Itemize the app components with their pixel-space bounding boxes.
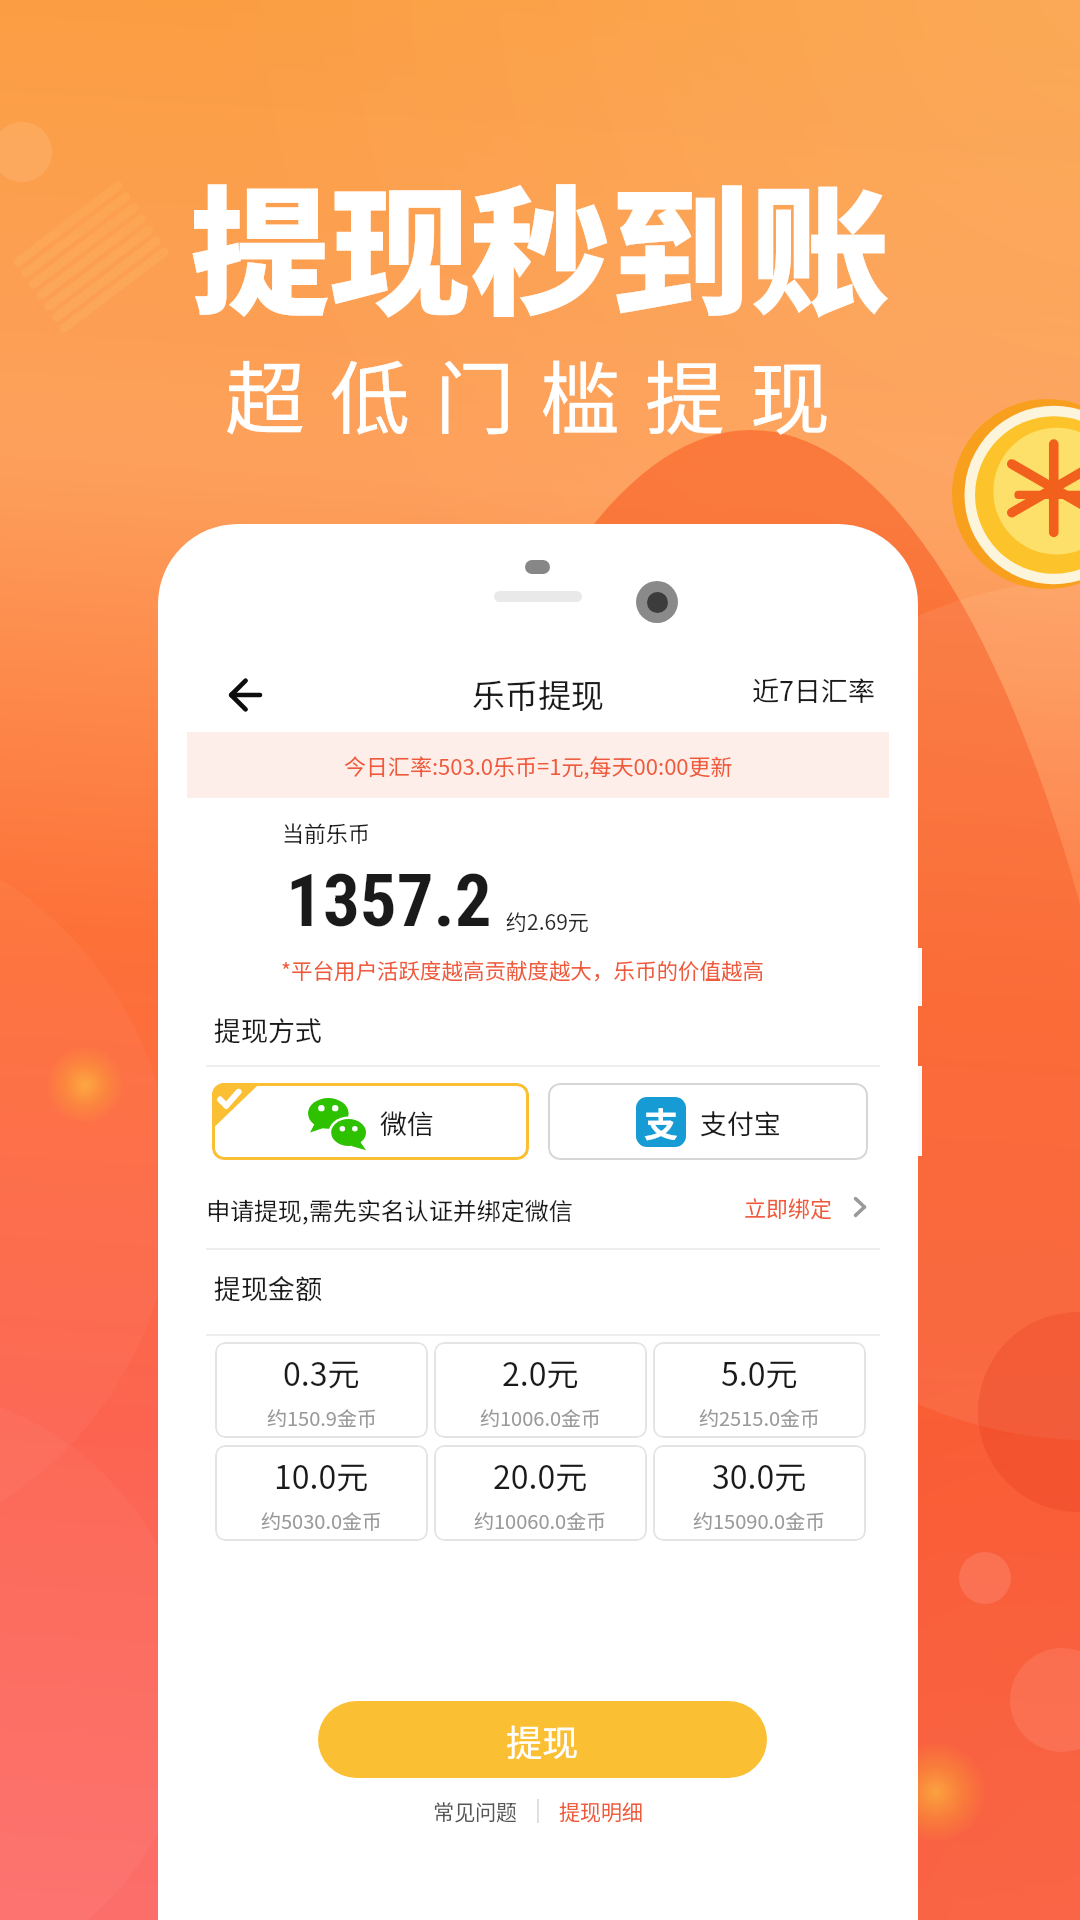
staticText: 30.0元 xyxy=(712,1452,807,1498)
button[interactable]: 近7日汇率 xyxy=(752,666,888,712)
staticText: 支 xyxy=(644,1098,678,1147)
button[interactable]: 30.0元 xyxy=(653,1445,866,1541)
staticText: 立即绑定 xyxy=(744,1191,833,1223)
staticText: 约5030.0金币 xyxy=(261,1506,383,1535)
button[interactable]: 5.0元 xyxy=(653,1342,866,1438)
staticText: 2.0元 xyxy=(502,1349,579,1395)
button[interactable]: 0.3元 xyxy=(215,1342,428,1438)
staticText: 提现 xyxy=(506,1714,579,1766)
staticText: 支付宝 xyxy=(700,1103,781,1142)
staticText: 当前乐币 xyxy=(282,816,371,848)
staticText: 常见问题 xyxy=(433,1796,517,1826)
staticText: 约15090.0金币 xyxy=(693,1506,826,1535)
button[interactable]: 常见问题 xyxy=(433,1796,517,1826)
staticText: 申请提现,需先实名认证并绑定微信 xyxy=(206,1192,573,1227)
staticText: 约10060.0金币 xyxy=(474,1506,607,1535)
button[interactable]: Back xyxy=(210,660,280,730)
staticText: 20.0元 xyxy=(493,1452,588,1498)
staticText: 微信 xyxy=(380,1103,434,1142)
staticText: 提现方式 xyxy=(214,1010,322,1049)
staticText: 超低门槛提现 xyxy=(225,335,855,451)
staticText: 约150.9金币 xyxy=(267,1403,377,1432)
staticText: *平台用户活跃度越高贡献度越大，乐币的价值越高 xyxy=(281,954,765,985)
staticText: 提现秒到账 xyxy=(190,142,891,345)
button[interactable]: 提现明细 xyxy=(559,1796,643,1826)
staticText: 10.0元 xyxy=(274,1452,369,1498)
staticText: 0.3元 xyxy=(283,1349,360,1395)
staticText: 乐币提现 xyxy=(472,670,604,718)
staticText: 今日汇率:503.0乐币=1元,每天00:00更新 xyxy=(344,749,733,781)
button[interactable]: 立即绑定 xyxy=(744,1186,875,1228)
button[interactable]: 20.0元 xyxy=(434,1445,647,1541)
staticText: 约1006.0金币 xyxy=(480,1403,602,1432)
button[interactable]: 2.0元 xyxy=(434,1342,647,1438)
button[interactable]: 提现 xyxy=(318,1701,767,1778)
staticText: 约2.69元 xyxy=(506,906,589,936)
staticText: 提现明细 xyxy=(559,1796,643,1826)
staticText: 近7日汇率 xyxy=(752,670,875,709)
button[interactable]: 10.0元 xyxy=(215,1445,428,1541)
button[interactable]: 支 xyxy=(548,1083,868,1160)
button[interactable]: 微信 xyxy=(212,1083,529,1160)
staticText: 1357.2 xyxy=(286,858,492,944)
staticText: 约2515.0金币 xyxy=(699,1403,821,1432)
staticText: 提现金额 xyxy=(214,1268,322,1307)
staticText: 5.0元 xyxy=(721,1349,798,1395)
